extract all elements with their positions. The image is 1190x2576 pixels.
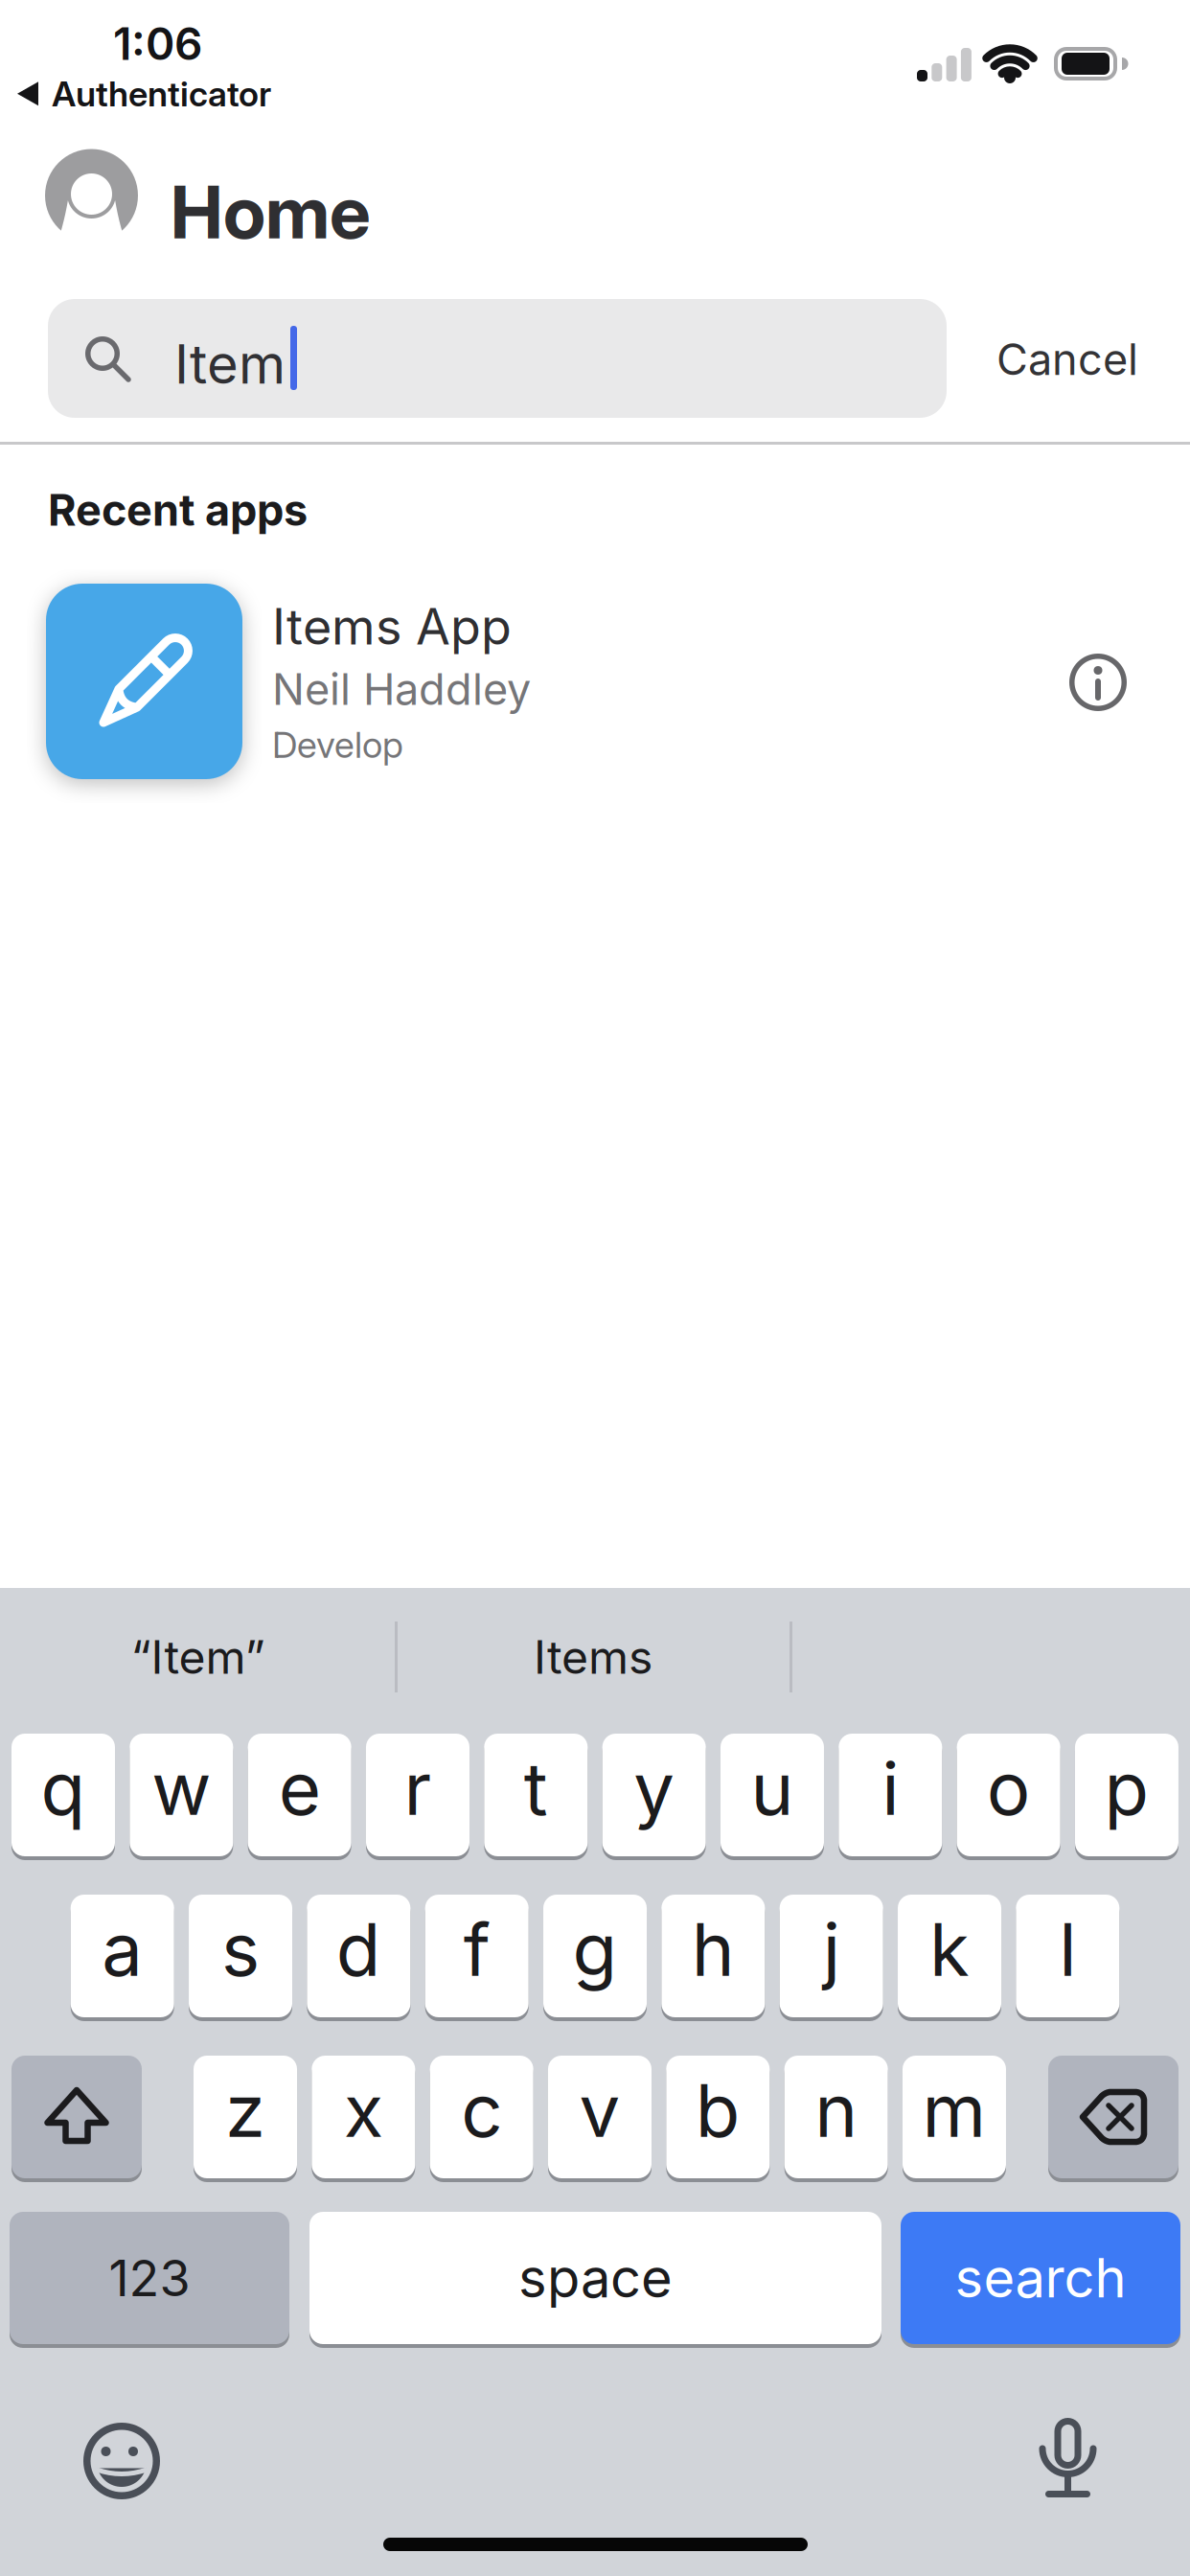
- button[interactable]: r: [366, 1734, 469, 1856]
- button[interactable]: Search: [48, 299, 947, 418]
- button[interactable]: Emoji: [83, 2423, 160, 2499]
- staticText: n: [815, 2066, 858, 2154]
- staticText: y: [633, 1744, 675, 1832]
- button[interactable]: i: [839, 1734, 942, 1856]
- button[interactable]: space: [309, 2212, 881, 2344]
- button[interactable]: t: [484, 1734, 588, 1856]
- button[interactable]: k: [898, 1895, 1001, 2017]
- button[interactable]: z: [194, 2056, 297, 2178]
- staticText: i: [882, 1744, 899, 1832]
- button[interactable]: Items: [396, 1588, 790, 1726]
- button[interactable]: d: [307, 1895, 410, 2017]
- button[interactable]: Delete: [1048, 2056, 1179, 2178]
- staticText: v: [579, 2066, 620, 2154]
- staticText: d: [336, 1905, 381, 1993]
- button[interactable]: Account: [45, 149, 138, 242]
- button[interactable]: u: [721, 1734, 824, 1856]
- button[interactable]: c: [430, 2056, 533, 2178]
- button[interactable]: v: [548, 2056, 652, 2178]
- staticText: g: [572, 1905, 618, 1993]
- staticText: h: [692, 1905, 735, 1993]
- button[interactable]: Items App: [46, 584, 1023, 779]
- staticText: Authenticator: [52, 73, 271, 115]
- button[interactable]: h: [661, 1895, 765, 2017]
- staticText: o: [986, 1744, 1031, 1832]
- staticText: w: [152, 1744, 211, 1832]
- staticText: search: [955, 2245, 1126, 2310]
- button[interactable]: p: [1075, 1734, 1179, 1856]
- staticText: z: [225, 2066, 265, 2154]
- staticText: Recent apps: [48, 484, 308, 536]
- staticText: 123: [109, 2248, 190, 2308]
- staticText: m: [922, 2066, 986, 2154]
- staticText: Develop: [272, 723, 403, 767]
- button[interactable]: Authenticator: [17, 73, 271, 115]
- button[interactable]: “Item”: [0, 1588, 396, 1726]
- staticText: Items App: [272, 596, 512, 656]
- staticText: 1:06: [113, 17, 202, 71]
- staticText: Neil Haddley: [272, 663, 531, 715]
- staticText: e: [279, 1744, 321, 1832]
- staticText: b: [695, 2066, 740, 2154]
- staticText: u: [751, 1744, 794, 1832]
- button[interactable]: f: [425, 1895, 529, 2017]
- button[interactable]: b: [666, 2056, 770, 2178]
- button[interactable]: y: [602, 1734, 706, 1856]
- staticText: l: [1059, 1905, 1076, 1993]
- staticText: space: [518, 2245, 673, 2310]
- staticText: q: [41, 1744, 86, 1832]
- staticText: f: [463, 1905, 490, 1993]
- button[interactable]: m: [903, 2056, 1006, 2178]
- button[interactable]: g: [543, 1895, 647, 2017]
- button[interactable]: Numbers: [10, 2212, 289, 2344]
- button[interactable]: a: [71, 1895, 174, 2017]
- staticText: t: [524, 1744, 548, 1832]
- button[interactable]: o: [957, 1734, 1060, 1856]
- staticText: a: [102, 1905, 143, 1993]
- button[interactable]: search: [901, 2212, 1180, 2344]
- staticText: p: [1104, 1744, 1149, 1832]
- staticText: Home: [171, 168, 371, 256]
- button[interactable]: n: [784, 2056, 888, 2178]
- staticText: x: [344, 2066, 383, 2154]
- button[interactable]: l: [1016, 1895, 1119, 2017]
- staticText: Cancel: [996, 333, 1138, 385]
- staticText: Items: [534, 1629, 652, 1685]
- button[interactable]: e: [248, 1734, 351, 1856]
- staticText: Item: [174, 332, 286, 397]
- staticText: c: [461, 2066, 502, 2154]
- staticText: k: [929, 1905, 970, 1993]
- button[interactable]: q: [11, 1734, 115, 1856]
- staticText: r: [404, 1744, 432, 1832]
- staticText: j: [823, 1905, 840, 1993]
- button[interactable]: App info: [1069, 654, 1127, 711]
- button[interactable]: Cancel: [927, 326, 1138, 393]
- staticText: “Item”: [131, 1629, 265, 1685]
- staticText: s: [221, 1905, 260, 1993]
- button[interactable]: x: [312, 2056, 415, 2178]
- button[interactable]: s: [189, 1895, 292, 2017]
- button[interactable]: Shift: [11, 2056, 142, 2178]
- button[interactable]: Dictate: [1042, 2418, 1093, 2497]
- button[interactable]: w: [130, 1734, 233, 1856]
- button[interactable]: j: [780, 1895, 883, 2017]
